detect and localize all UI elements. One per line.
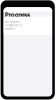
staticText: session. xyxy=(5,27,16,30)
staticText: Progress xyxy=(5,12,30,19)
staticText: Complete a xyxy=(5,24,21,27)
staticText: No data yet. xyxy=(5,20,21,23)
